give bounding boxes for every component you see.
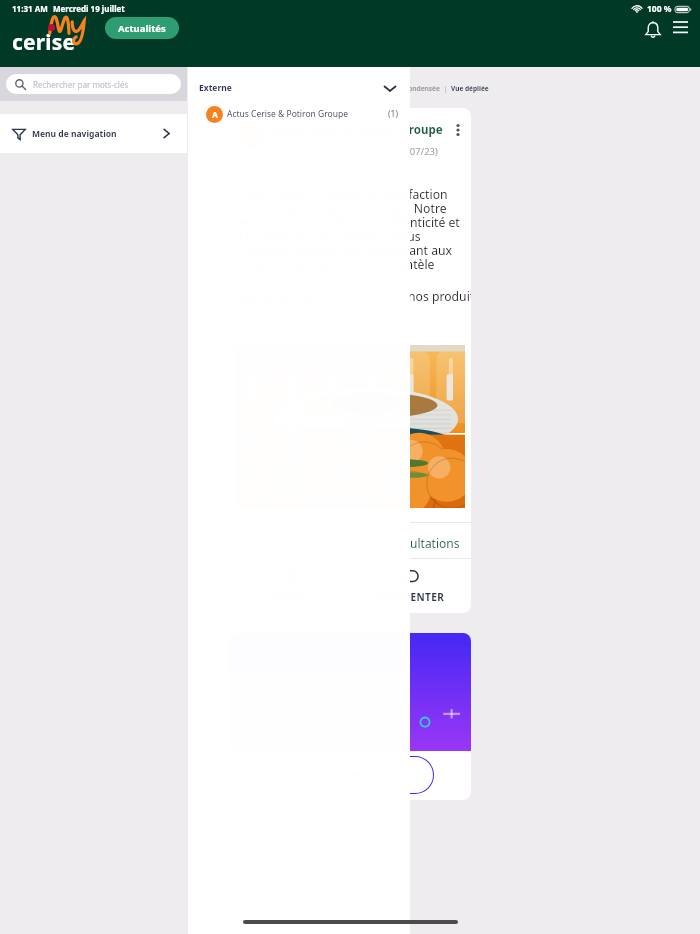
staticText: cerise [12,28,76,57]
button[interactable]: A [188,100,410,128]
staticText: COMMENTER [376,590,445,604]
staticText: Actualités [118,22,166,35]
button[interactable]: Plus d'options [450,122,466,138]
button[interactable]: Rechercher par mots-clés [6,74,181,94]
staticText: 82 consultations [367,535,460,551]
staticText: Menu de navigation [32,128,117,140]
button[interactable]: Externe [188,67,410,108]
button[interactable]: Menu [669,16,693,40]
staticText: Actus Cerise & Potiron Groupe [270,122,443,138]
staticText: Publié par Cerise & Potiron (20/07/23) [270,145,438,158]
staticText: Retrouvez dès à présent tous nos produit… [239,288,471,318]
staticText: Vue condensée [391,84,440,93]
staticText: 100 % [647,3,672,15]
staticText: 11:31 AM [12,3,48,14]
staticText: (1) [388,108,398,120]
button[interactable]: Notifications [641,18,665,42]
button[interactable]: Menu de navigation [0,114,187,153]
button[interactable]: Actualités [105,17,179,39]
staticText: Externe [199,82,232,94]
staticText: Vue dépliée [451,84,489,93]
button[interactable]: COMMENTER [350,559,471,613]
staticText: Chez Cerise & Potiron, la satisfaction d… [239,186,460,272]
staticText: Actus Cerise & Potiron Groupe [227,108,348,120]
staticText: Rechercher par mots-clés [33,79,129,90]
staticText: A [212,109,218,121]
button[interactable]: EN SAVOIR PLUS [243,756,434,794]
staticText: Mercredi 19 juillet [53,3,125,14]
staticText: | [440,84,451,93]
